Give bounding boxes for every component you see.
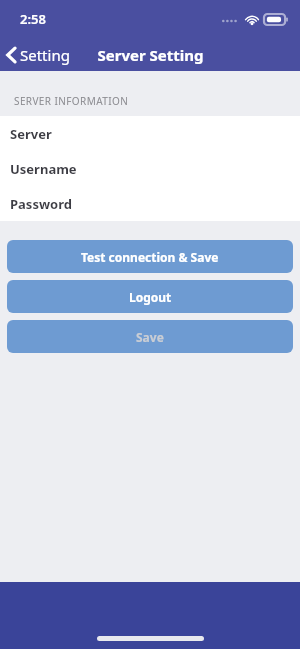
staticText: Logout [129, 289, 172, 305]
staticText: Save [136, 329, 164, 345]
button[interactable]: Save [7, 320, 293, 353]
staticText: SERVER INFORMATION [14, 94, 129, 108]
button[interactable]: Test connection & Save [7, 240, 293, 273]
staticText: Setting [20, 45, 70, 65]
button[interactable]: Logout [7, 280, 293, 313]
staticText: 2:58 [20, 10, 46, 28]
button[interactable]: Username [0, 151, 300, 186]
staticText: Username [10, 160, 77, 178]
button[interactable]: Server [0, 116, 300, 151]
staticText: Test connection & Save [81, 249, 219, 265]
staticText: Server Setting [97, 45, 204, 65]
staticText: Password [10, 195, 72, 213]
staticText: Server [10, 125, 52, 143]
button[interactable]: Setting [0, 41, 80, 69]
button[interactable]: Password [0, 186, 300, 221]
